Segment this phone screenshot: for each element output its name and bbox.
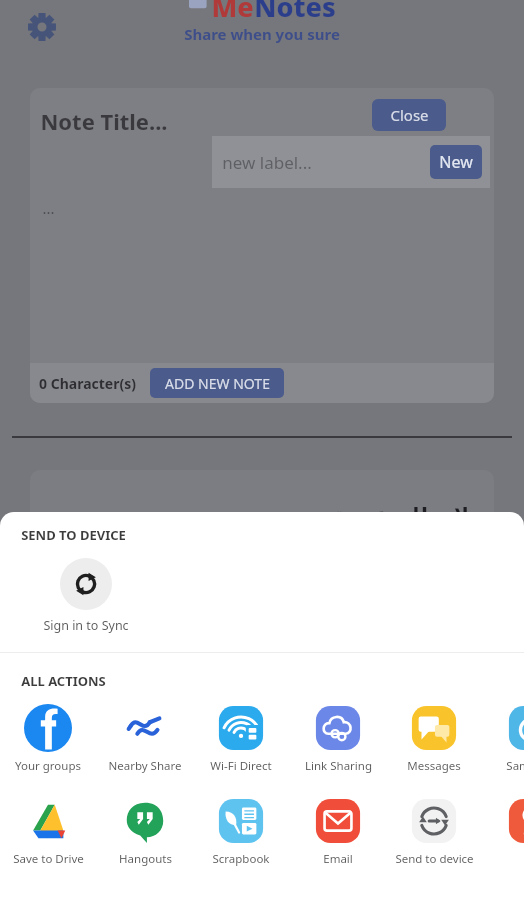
staticText: Note Title... (40, 106, 168, 136)
staticText: ... (42, 198, 55, 218)
staticText: 0 Character(s) (39, 374, 136, 393)
button[interactable]: Sign in to Sync (43, 558, 129, 634)
staticText: Close (390, 105, 429, 125)
button[interactable]: Scrapbook (193, 797, 289, 867)
button[interactable]: Samsung (483, 704, 524, 774)
button[interactable]: Send to device (386, 797, 482, 867)
button[interactable]: Nearby Share (97, 704, 193, 774)
staticText: Messages (407, 758, 461, 774)
staticText: Link Sharing (305, 758, 372, 774)
staticText: Notes (254, 0, 336, 25)
staticText: Email (323, 851, 353, 867)
button[interactable]: Email (290, 797, 386, 867)
staticText: Me (211, 0, 254, 25)
staticText: Samsung (506, 758, 524, 774)
button[interactable]: Close (372, 99, 446, 131)
staticText: Share when you sure (184, 24, 340, 44)
staticText: Scrapbook (212, 851, 270, 867)
staticText: Save to Drive (13, 851, 84, 867)
button[interactable]: Hangouts (97, 797, 193, 867)
staticText: Your groups (15, 758, 81, 774)
button[interactable]: Link Sharing (290, 704, 386, 774)
staticText: ALL ACTIONS (21, 672, 106, 690)
staticText: Sign in to Sync (43, 617, 129, 634)
staticText: Wi-Fi Direct (210, 758, 272, 774)
staticText: Hangouts (119, 851, 172, 867)
staticText: ملاحظات عربية (333, 501, 482, 528)
staticText: ADD NEW NOTE (165, 374, 270, 393)
button[interactable]: Settings (24, 9, 60, 45)
button[interactable]: ADD NEW NOTE (150, 368, 284, 398)
button[interactable]: Wi-Fi Direct (193, 704, 289, 774)
button[interactable]: New (430, 145, 482, 179)
button[interactable]: Messages (386, 704, 482, 774)
staticText: Nearby Share (108, 758, 182, 774)
staticText: New (439, 151, 473, 173)
staticText: Send to device (395, 851, 474, 867)
button[interactable]: Save to Drive (0, 797, 96, 867)
button[interactable]: Your groups (0, 704, 96, 774)
staticText: SEND TO DEVICE (21, 526, 126, 544)
button[interactable]: S (483, 797, 524, 867)
staticText: new label... (222, 151, 312, 174)
